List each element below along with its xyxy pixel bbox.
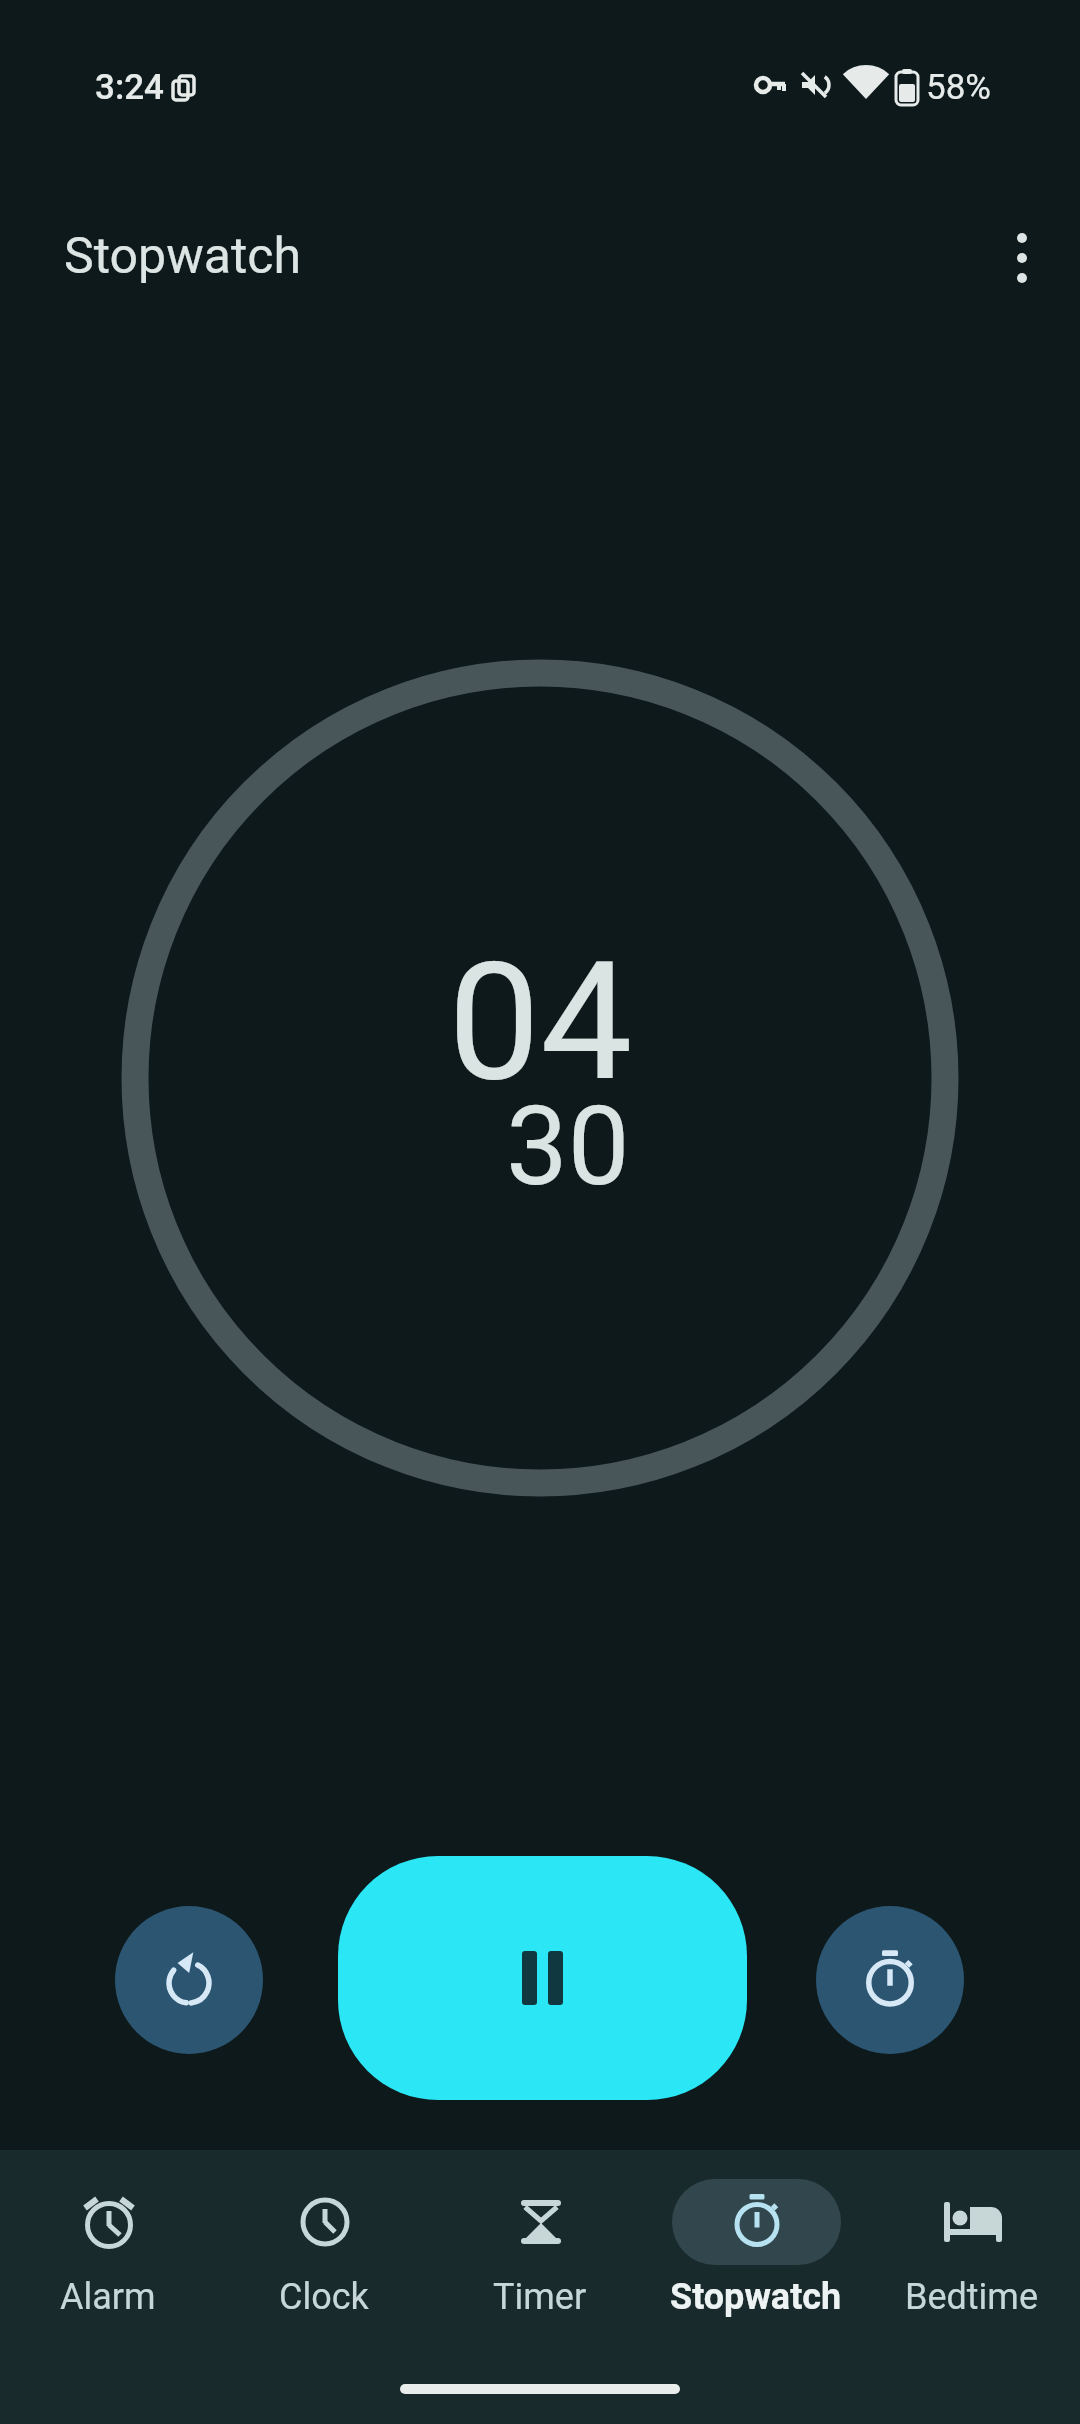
staticText: Bedtime	[905, 2276, 1039, 2318]
staticText: 58%	[926, 67, 991, 108]
button[interactable]: Timer	[432, 2150, 648, 2318]
staticText: Stopwatch	[670, 2276, 842, 2318]
staticText: 3:24	[95, 67, 164, 108]
button[interactable]	[990, 225, 1054, 291]
staticText: 30	[506, 1082, 630, 1211]
button[interactable]: Bedtime	[864, 2150, 1080, 2318]
staticText: 04	[448, 926, 633, 1118]
button[interactable]: Alarm	[0, 2150, 216, 2318]
staticText: Clock	[279, 2276, 369, 2318]
button[interactable]: Stopwatch	[648, 2150, 864, 2318]
button[interactable]: Clock	[216, 2150, 432, 2318]
button[interactable]	[816, 1906, 964, 2054]
staticText: Alarm	[60, 2276, 156, 2318]
button[interactable]	[338, 1856, 747, 2100]
button[interactable]	[115, 1906, 263, 2054]
staticText: Timer	[493, 2276, 587, 2318]
staticText: Stopwatch	[64, 227, 301, 286]
